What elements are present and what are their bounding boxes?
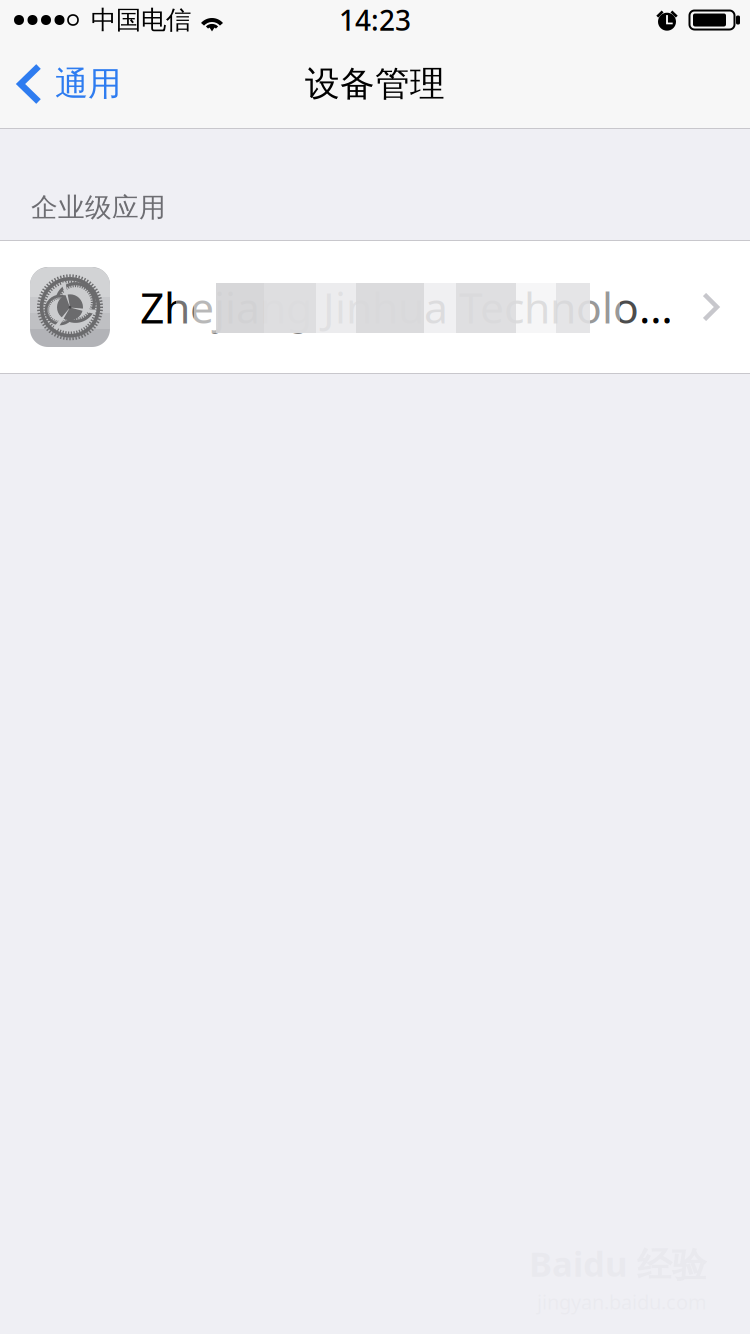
staticText: 设备管理 (305, 63, 445, 105)
button[interactable]: Zhejiang Jinhua Technolo… (0, 241, 750, 373)
staticText: 中国电信 (91, 4, 191, 35)
staticText: 企业级应用 (31, 191, 166, 224)
staticText: 通用 (55, 63, 121, 104)
staticText: Zhejiang Jinhua Technolo… (140, 279, 673, 335)
button[interactable]: 通用 (0, 40, 137, 128)
staticText: 14:23 (339, 1, 411, 39)
